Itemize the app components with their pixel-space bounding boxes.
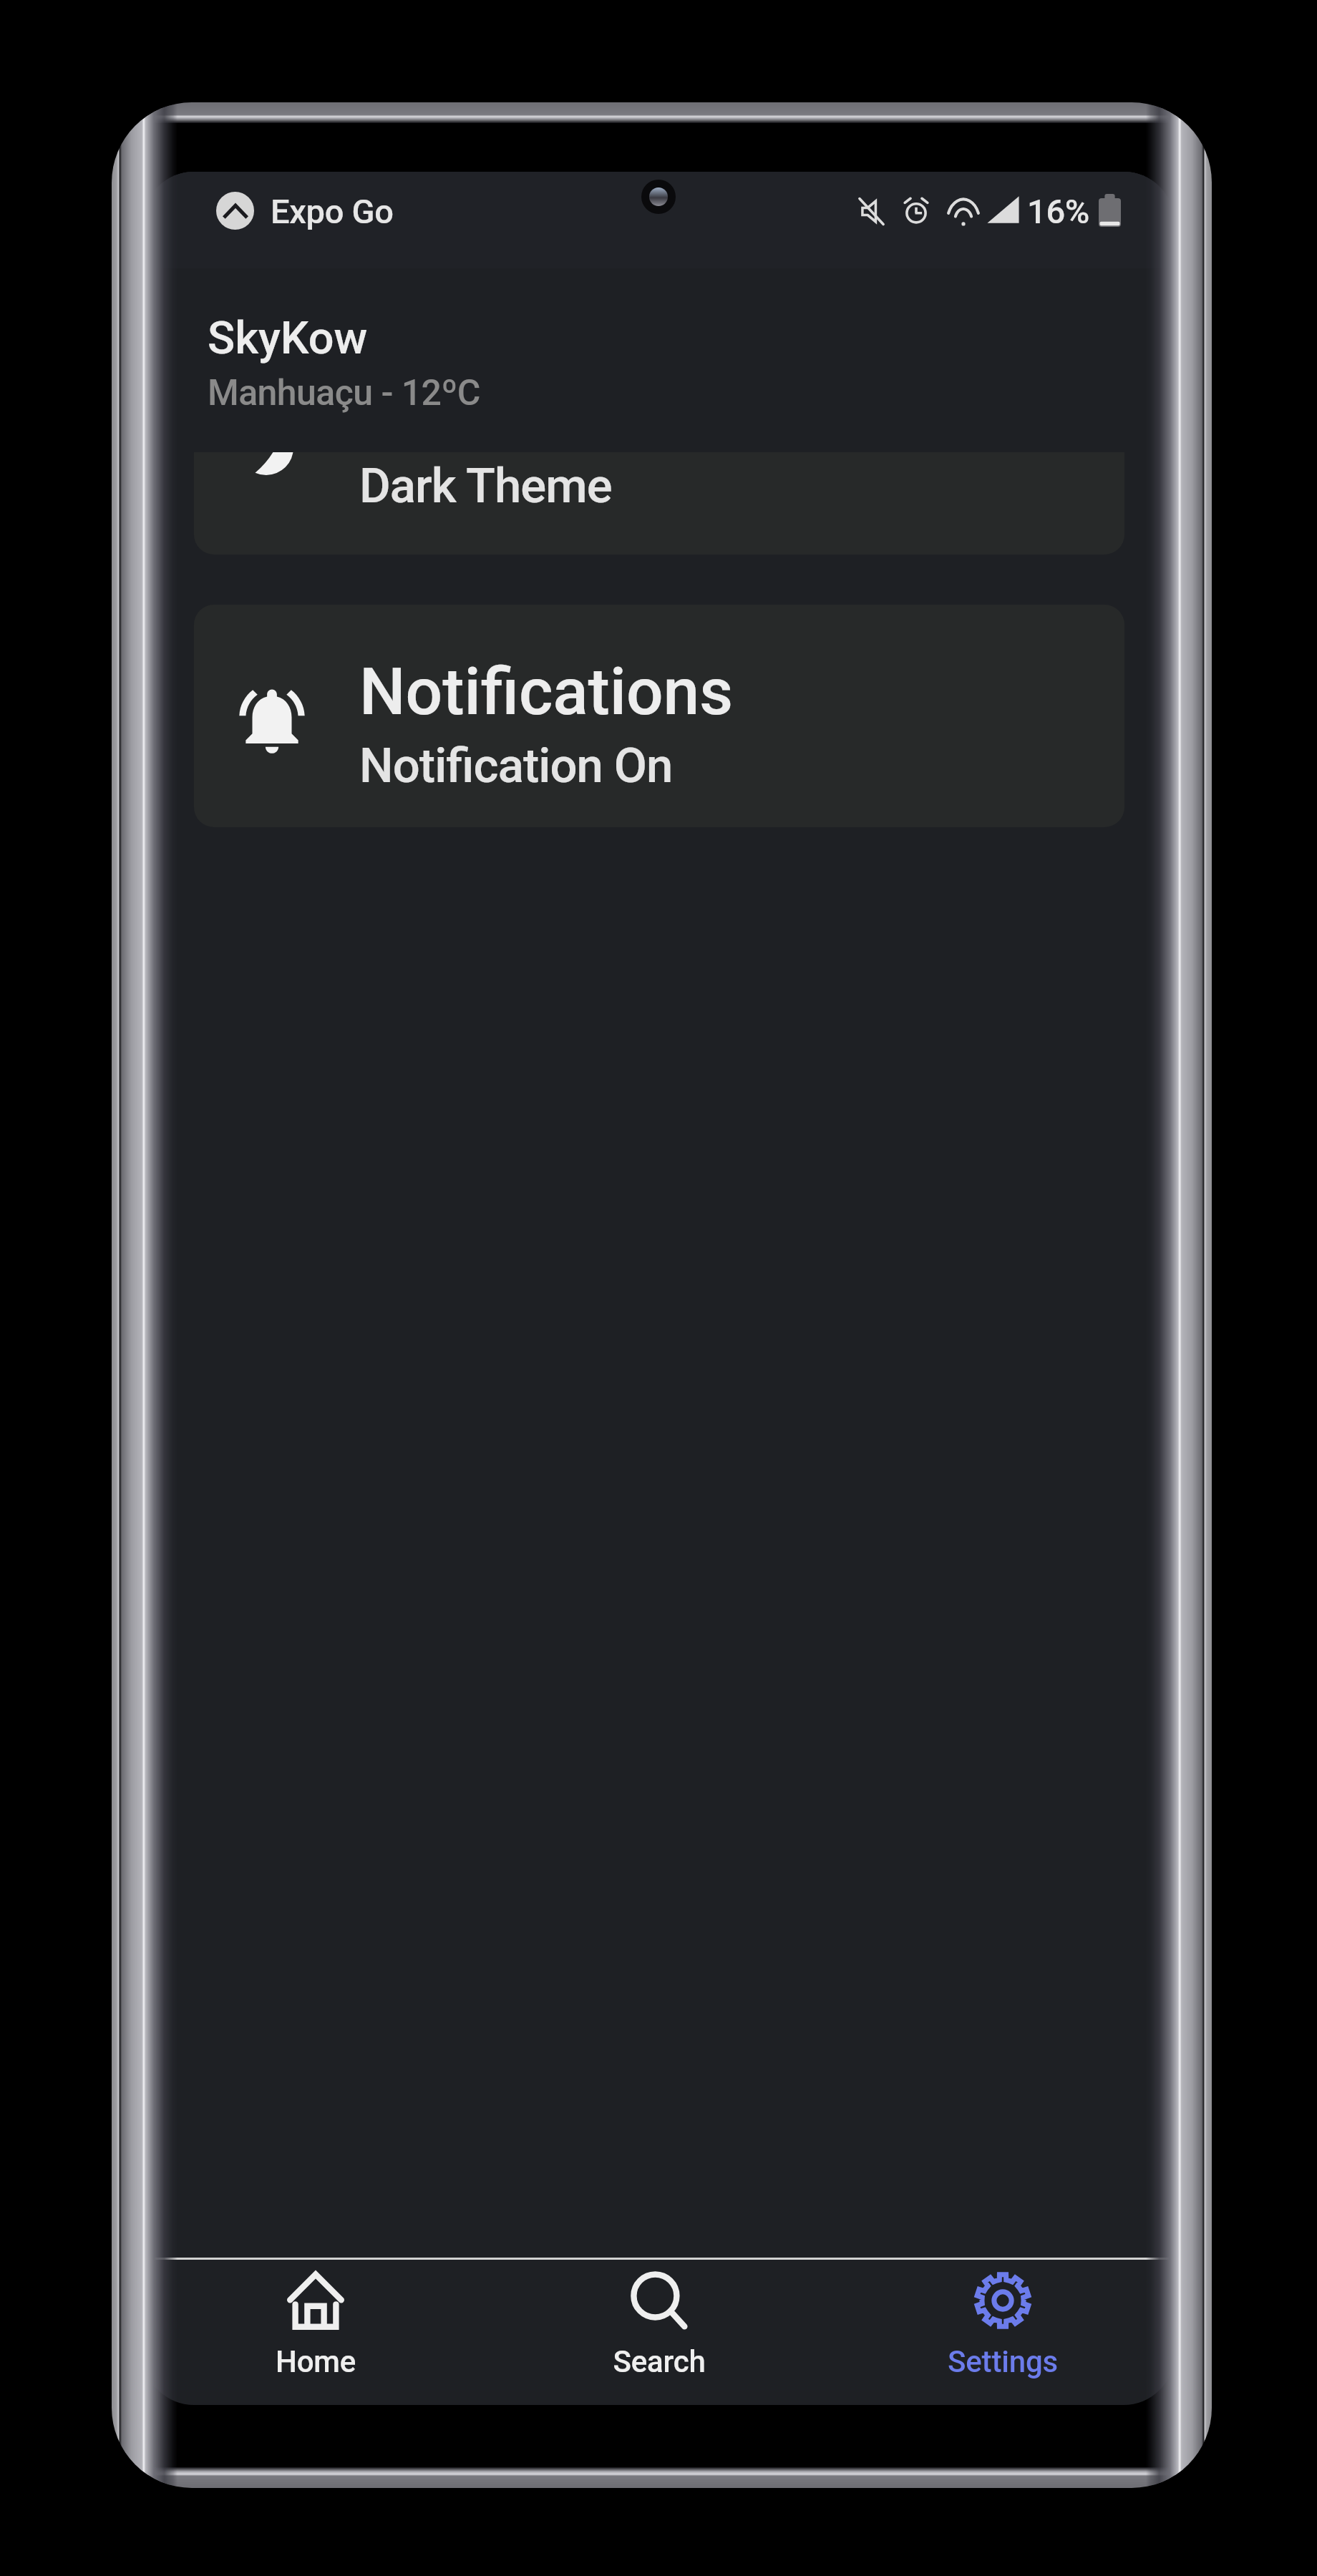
button[interactable]: Search bbox=[487, 2260, 831, 2405]
button[interactable]: Notifications bbox=[194, 605, 1124, 827]
staticText: Notifications bbox=[359, 654, 734, 731]
staticText: SkyKow bbox=[208, 312, 368, 365]
button[interactable]: Settings bbox=[831, 2260, 1174, 2405]
button[interactable]: Home bbox=[144, 2260, 487, 2405]
staticText: Dark Theme bbox=[359, 458, 612, 514]
staticText: Theme bbox=[359, 374, 562, 451]
staticText: Notification On bbox=[359, 738, 673, 794]
staticText: Search bbox=[613, 2344, 706, 2379]
button[interactable]: Theme bbox=[194, 332, 1124, 555]
staticText: Expo Go bbox=[271, 192, 394, 231]
staticText: 16% bbox=[1027, 192, 1090, 231]
staticText: Manhuaçu - 12ºC bbox=[208, 372, 480, 414]
staticText: Home bbox=[276, 2344, 356, 2379]
staticText: Settings bbox=[948, 2344, 1058, 2379]
